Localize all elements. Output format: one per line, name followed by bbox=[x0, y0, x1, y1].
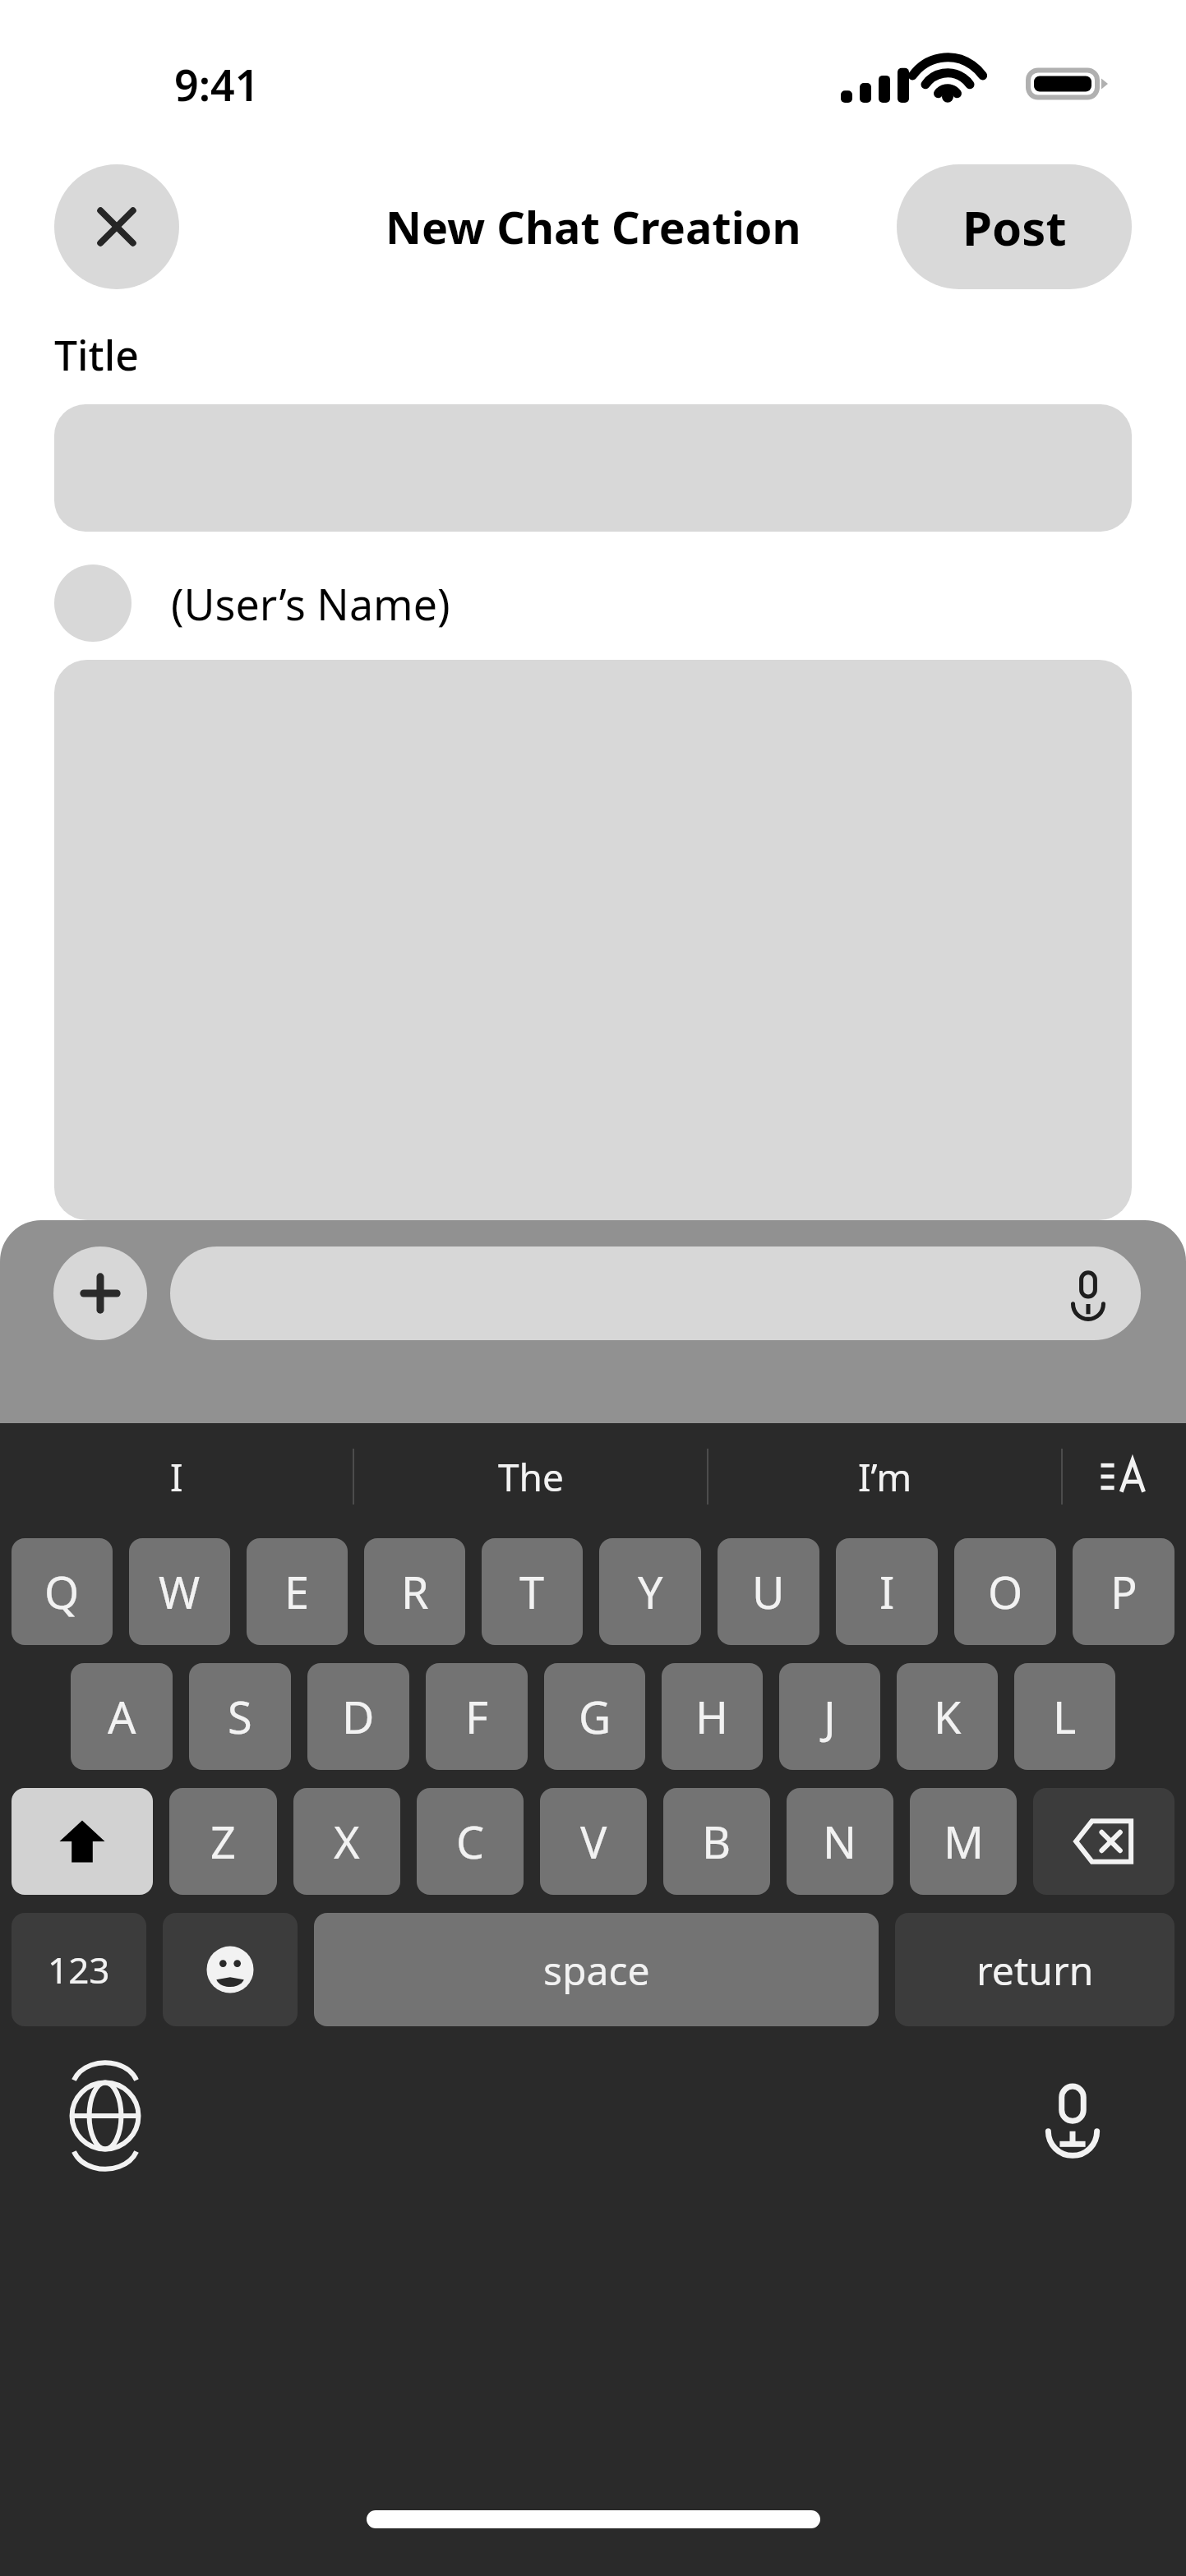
staticText: I bbox=[170, 1451, 183, 1503]
button[interactable]: The bbox=[354, 1423, 707, 1530]
staticText: New Chat Creation bbox=[385, 196, 801, 257]
staticText: 9:41 bbox=[174, 55, 260, 113]
button[interactable]: P bbox=[1073, 1538, 1174, 1645]
staticText: X bbox=[334, 1811, 360, 1872]
staticText: (User’s Name) bbox=[171, 574, 450, 633]
staticText: B bbox=[702, 1811, 731, 1872]
button[interactable]: Voice input bbox=[1065, 1270, 1111, 1316]
staticText: G bbox=[579, 1686, 611, 1747]
button[interactable] bbox=[54, 404, 1132, 532]
button[interactable]: F bbox=[426, 1663, 528, 1770]
staticText: return bbox=[976, 1943, 1094, 1997]
staticText: E bbox=[284, 1561, 310, 1622]
button[interactable]: Emoji bbox=[163, 1913, 298, 2026]
button[interactable]: N bbox=[787, 1788, 893, 1895]
staticText: W bbox=[159, 1561, 201, 1622]
button[interactable]: K bbox=[897, 1663, 998, 1770]
staticText: T bbox=[519, 1561, 545, 1622]
button[interactable]: Dictation bbox=[1033, 2076, 1112, 2155]
staticText: O bbox=[988, 1561, 1023, 1622]
button[interactable]: T bbox=[482, 1538, 583, 1645]
staticText: A bbox=[108, 1686, 136, 1747]
button[interactable]: U bbox=[718, 1538, 819, 1645]
button[interactable]: Change keyboard bbox=[66, 2076, 145, 2155]
button[interactable]: O bbox=[954, 1538, 1056, 1645]
button[interactable]: R bbox=[364, 1538, 465, 1645]
staticText: L bbox=[1053, 1686, 1077, 1747]
staticText: M bbox=[944, 1811, 984, 1872]
button[interactable]: I’m bbox=[708, 1423, 1061, 1530]
staticText: The bbox=[498, 1451, 564, 1503]
staticText: I’m bbox=[858, 1451, 912, 1503]
button[interactable]: I bbox=[836, 1538, 938, 1645]
staticText: Y bbox=[638, 1561, 663, 1622]
button[interactable]: X bbox=[293, 1788, 400, 1895]
staticText: 123 bbox=[48, 1945, 110, 1994]
staticText: Z bbox=[210, 1811, 236, 1872]
staticText: Post bbox=[962, 195, 1067, 260]
staticText: I bbox=[879, 1561, 895, 1622]
staticText: H bbox=[695, 1686, 729, 1747]
button[interactable]: B bbox=[663, 1788, 770, 1895]
staticText: V bbox=[580, 1811, 607, 1872]
button[interactable]: Shift bbox=[12, 1788, 153, 1895]
staticText: S bbox=[228, 1686, 252, 1747]
button[interactable]: 123 bbox=[12, 1913, 146, 2026]
staticText: space bbox=[543, 1943, 650, 1997]
button[interactable]: J bbox=[779, 1663, 880, 1770]
staticText: K bbox=[934, 1686, 962, 1747]
staticText: D bbox=[342, 1686, 375, 1747]
staticText: Title bbox=[54, 327, 139, 383]
staticText: N bbox=[823, 1811, 857, 1872]
button[interactable]: Close bbox=[54, 164, 179, 289]
button[interactable]: M bbox=[910, 1788, 1017, 1895]
button[interactable]: Voice input bbox=[170, 1247, 1141, 1340]
button[interactable]: Q bbox=[12, 1538, 113, 1645]
button[interactable]: Text formatting bbox=[1063, 1423, 1186, 1530]
button[interactable]: return bbox=[895, 1913, 1174, 2026]
staticText: C bbox=[456, 1811, 485, 1872]
staticText: P bbox=[1110, 1561, 1138, 1622]
button[interactable]: W bbox=[129, 1538, 230, 1645]
button[interactable]: I bbox=[0, 1423, 353, 1530]
button[interactable]: A bbox=[71, 1663, 173, 1770]
button[interactable]: E bbox=[247, 1538, 348, 1645]
button[interactable]: Z bbox=[169, 1788, 277, 1895]
button[interactable]: V bbox=[540, 1788, 647, 1895]
button[interactable]: L bbox=[1014, 1663, 1115, 1770]
staticText: Q bbox=[44, 1561, 80, 1622]
button[interactable]: Y bbox=[599, 1538, 701, 1645]
button[interactable]: Backspace bbox=[1033, 1788, 1174, 1895]
button[interactable]: G bbox=[544, 1663, 645, 1770]
staticText: J bbox=[824, 1686, 836, 1747]
button[interactable]: C bbox=[417, 1788, 524, 1895]
staticText: F bbox=[465, 1686, 489, 1747]
staticText: U bbox=[752, 1561, 785, 1622]
staticText: R bbox=[401, 1561, 429, 1622]
button[interactable]: space bbox=[314, 1913, 879, 2026]
button[interactable]: D bbox=[307, 1663, 409, 1770]
button[interactable]: Post bbox=[897, 164, 1132, 289]
button[interactable]: Add attachment bbox=[53, 1247, 147, 1340]
button[interactable]: S bbox=[189, 1663, 291, 1770]
button[interactable]: H bbox=[662, 1663, 763, 1770]
